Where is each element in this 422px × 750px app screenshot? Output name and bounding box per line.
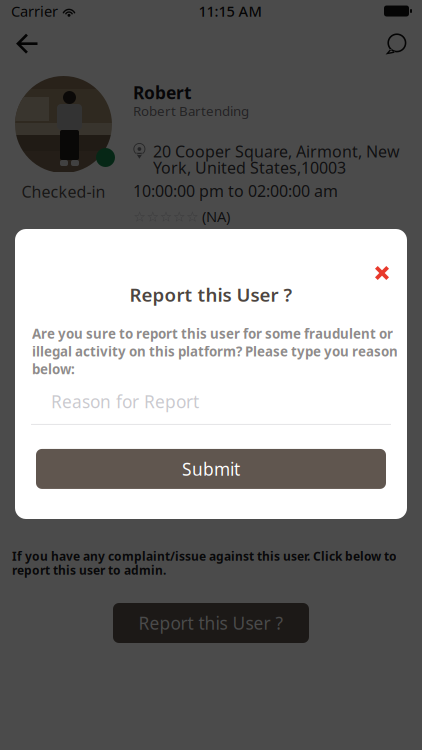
button[interactable]: Messages — [371, 22, 422, 64]
staticText: Robert — [133, 81, 192, 104]
staticText: Carrier — [11, 1, 58, 21]
staticText: 20 Cooper Square, Airmont, New York, Uni… — [153, 141, 400, 178]
staticText: 11:15 AM — [198, 1, 261, 21]
staticText: Checked-in — [21, 181, 105, 202]
staticText: Submit — [182, 457, 240, 480]
staticText: Robert Bartending — [133, 102, 249, 120]
staticText: (NA) — [202, 206, 230, 226]
button[interactable]: Close — [368, 259, 396, 281]
staticText: Reason for Report — [51, 390, 199, 413]
staticText: If you have any complaint/issue against … — [12, 548, 397, 578]
staticText: Are you sure to report this user for som… — [32, 325, 398, 378]
staticText: Report this User ? — [138, 611, 283, 634]
staticText: 10:00:00 pm to 02:00:00 am — [133, 180, 338, 201]
button[interactable]: Submit — [36, 449, 386, 489]
staticText: Report this User ? — [129, 282, 292, 307]
button[interactable]: Back — [0, 22, 53, 65]
button[interactable]: Report this User ? — [113, 603, 309, 643]
